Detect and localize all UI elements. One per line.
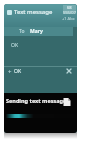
staticText: To (19, 28, 25, 35)
button[interactable]: + (8, 67, 77, 76)
staticText: Mary (30, 28, 43, 35)
button[interactable]: 68 (63, 5, 76, 14)
button[interactable]: Cancel (64, 66, 74, 76)
staticText: OK (14, 68, 22, 75)
staticText: Text message (14, 8, 53, 16)
staticText: 555/0798 (63, 10, 76, 14)
button[interactable]: To (4, 27, 73, 36)
staticText: OK (11, 42, 19, 49)
staticText: +1 Abc (62, 16, 75, 21)
button[interactable]: Text message (4, 4, 77, 27)
staticText: Sending text message (6, 97, 67, 104)
staticText: + (8, 68, 12, 76)
staticText: 68 (67, 5, 72, 10)
